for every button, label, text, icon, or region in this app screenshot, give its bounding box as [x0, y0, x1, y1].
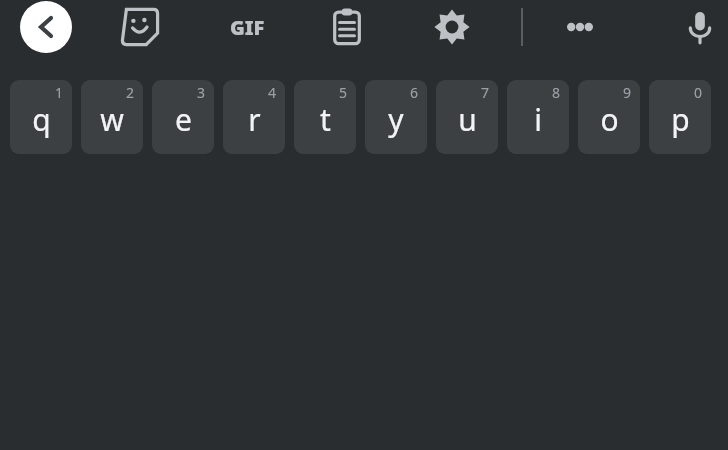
staticText: y: [388, 99, 404, 140]
staticText: 8: [552, 83, 561, 102]
button[interactable]: u: [436, 80, 498, 154]
staticText: w: [100, 99, 124, 140]
button[interactable]: y: [365, 80, 427, 154]
staticText: 7: [481, 83, 490, 102]
button[interactable]: Settings: [430, 5, 474, 49]
button[interactable]: Voice input: [678, 5, 722, 49]
staticText: p: [671, 99, 690, 140]
staticText: o: [600, 99, 619, 140]
button[interactable]: t: [294, 80, 356, 154]
staticText: 0: [694, 83, 703, 102]
staticText: r: [248, 99, 261, 140]
staticText: 6: [410, 83, 419, 102]
staticText: u: [458, 99, 477, 140]
staticText: i: [534, 99, 542, 140]
staticText: GIF: [230, 14, 265, 41]
button[interactable]: q: [10, 80, 72, 154]
button[interactable]: i: [507, 80, 569, 154]
button[interactable]: Back: [20, 1, 72, 53]
button[interactable]: w: [81, 80, 143, 154]
staticText: q: [32, 99, 51, 140]
button[interactable]: More options: [558, 5, 602, 49]
staticText: t: [320, 99, 331, 140]
staticText: 9: [623, 83, 632, 102]
staticText: 5: [339, 83, 348, 102]
staticText: e: [175, 99, 192, 140]
button[interactable]: Clipboard: [325, 5, 369, 49]
button[interactable]: GIF: [212, 6, 282, 48]
button[interactable]: r: [223, 80, 285, 154]
staticText: 2: [126, 83, 135, 102]
button[interactable]: p: [649, 80, 711, 154]
button[interactable]: Stickers: [118, 5, 162, 49]
staticText: 3: [197, 83, 206, 102]
button[interactable]: e: [152, 80, 214, 154]
staticText: 4: [268, 83, 277, 102]
button[interactable]: o: [578, 80, 640, 154]
staticText: 1: [55, 83, 64, 102]
